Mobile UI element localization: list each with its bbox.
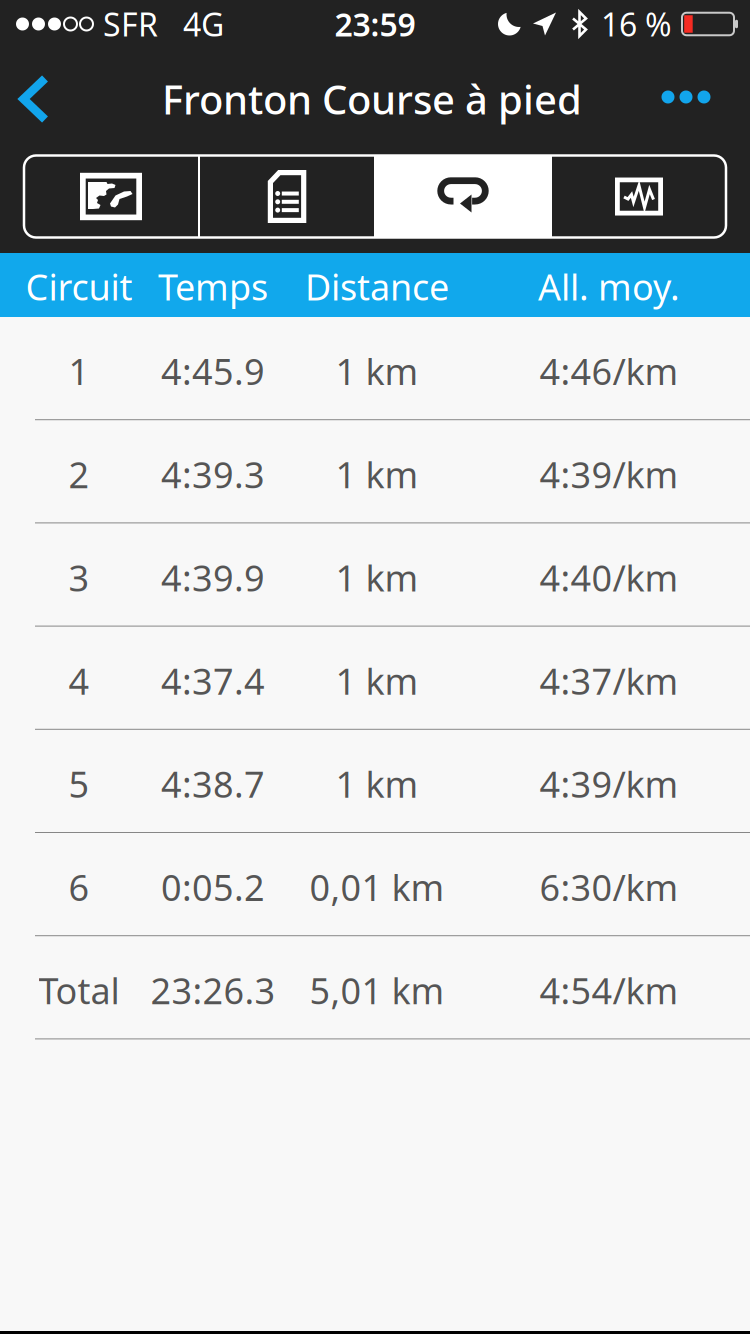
staticText: Total [38,966,119,1014]
staticText: Temps [158,263,268,310]
staticText: 23:26.3 [150,966,275,1014]
staticText: 4:40/km [539,554,678,601]
staticText: 4:39/km [539,760,678,808]
button[interactable]: More options [636,51,736,143]
staticText: 4 [68,657,89,705]
staticText: 4:39.3 [161,450,265,498]
staticText: 1 km [335,554,418,601]
staticText: 4:37.4 [161,657,265,705]
staticText: 1 km [335,657,418,705]
staticText: 1 km [335,450,418,498]
staticText: Circuit [25,263,132,310]
staticText: 2 [68,450,89,498]
staticText: 4:39.9 [161,554,265,601]
staticText: 4:39/km [539,450,678,498]
staticText: Distance [305,263,449,310]
staticText: 1 [68,347,89,395]
staticText: 4:54/km [539,966,678,1014]
button[interactable]: Back [0,53,69,145]
staticText: 16 % [601,3,672,45]
staticText: 6 [68,863,89,911]
button[interactable]: Map [24,155,198,237]
staticText: 5 [68,760,89,808]
staticText: 4:38.7 [161,760,265,808]
staticText: 1 km [335,760,418,808]
staticText: 4:45.9 [161,347,265,395]
staticText: All. moy. [538,263,680,310]
staticText: SFR [103,3,158,45]
staticText: 4G [183,3,224,45]
staticText: Fronton Course à pied [162,72,582,125]
button[interactable]: Summary [200,155,374,237]
staticText: 6:30/km [539,863,678,911]
staticText: 0,01 km [309,863,444,911]
staticText: 5,01 km [309,966,444,1014]
staticText: 0:05.2 [161,863,265,911]
staticText: 23:59 [334,3,415,45]
staticText: 4:46/km [539,347,678,395]
staticText: 3 [68,554,89,601]
button[interactable]: Laps [376,155,550,237]
button[interactable]: Charts [552,155,726,237]
staticText: 4:37/km [539,657,678,705]
staticText: 1 km [335,347,418,395]
